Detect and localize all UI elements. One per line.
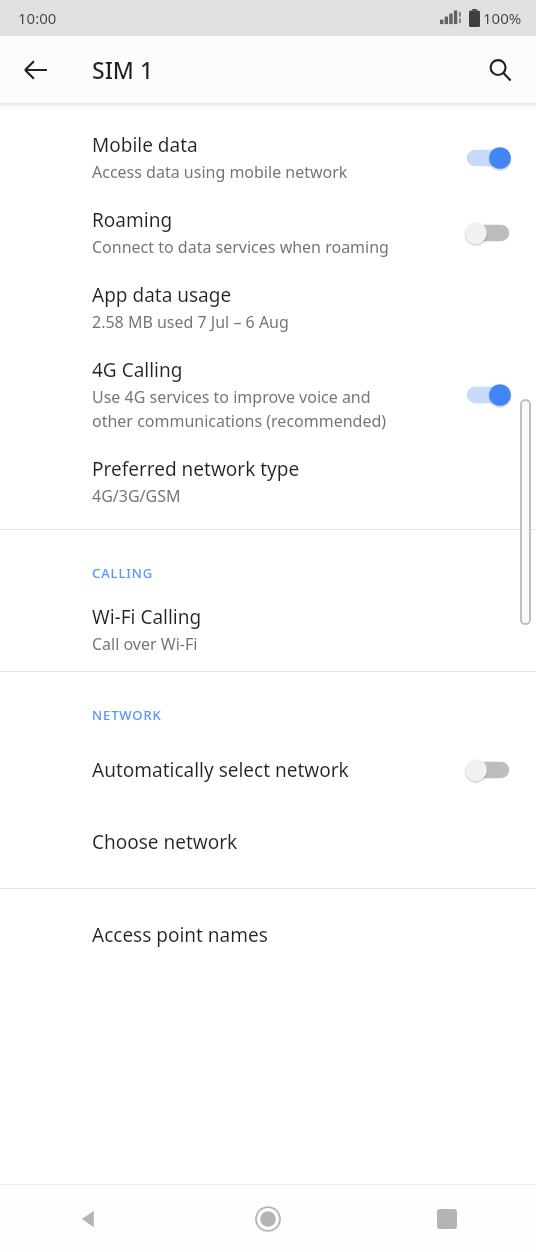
staticText: Wi-Fi Calling [92, 604, 202, 630]
staticText: 100% [483, 8, 522, 28]
staticText: Call over Wi-Fi [92, 633, 198, 655]
button[interactable]: Toggle off [460, 215, 516, 251]
staticText: 2.58 MB used 7 Jul – 6 Aug [92, 311, 289, 333]
staticText: Access data using mobile network [92, 161, 348, 183]
button[interactable]: Home [178, 1185, 357, 1252]
staticText: Access point names [92, 922, 268, 948]
button[interactable]: Back [8, 42, 64, 98]
staticText: 10:00 [18, 8, 57, 28]
button[interactable]: Recent apps [357, 1185, 536, 1252]
staticText: CALLING [92, 564, 154, 582]
button[interactable]: Roaming [0, 195, 536, 270]
button[interactable]: App data usage [0, 270, 536, 345]
staticText: Connect to data services when roaming [92, 236, 389, 258]
staticText: Mobile data [92, 132, 198, 158]
staticText: App data usage [92, 282, 232, 308]
staticText: Preferred network type [92, 456, 300, 482]
button[interactable]: Toggle off [460, 752, 516, 788]
staticText: Roaming [92, 207, 173, 233]
button[interactable]: Automatically select network [0, 734, 536, 806]
staticText: 4G/3G/GSM [92, 485, 181, 507]
staticText: 4G Calling [92, 357, 183, 383]
button[interactable]: 4G Calling [0, 345, 536, 444]
button[interactable]: Preferred network type [0, 444, 536, 519]
button[interactable]: Toggle on [460, 377, 516, 413]
staticText: NETWORK [92, 706, 162, 724]
button[interactable]: Search [472, 42, 528, 98]
button[interactable]: Choose network [0, 806, 536, 878]
button[interactable]: Mobile data [0, 120, 536, 195]
staticText: Automatically select network [92, 757, 349, 783]
button[interactable]: Toggle on [460, 140, 516, 176]
button[interactable]: Access point names [0, 899, 536, 971]
staticText: SIM 1 [92, 54, 154, 85]
button[interactable]: Back [0, 1185, 178, 1252]
staticText: Use 4G services to improve voice and oth… [92, 386, 387, 432]
button[interactable]: Wi-Fi Calling [0, 592, 536, 667]
staticText: Choose network [92, 829, 238, 855]
